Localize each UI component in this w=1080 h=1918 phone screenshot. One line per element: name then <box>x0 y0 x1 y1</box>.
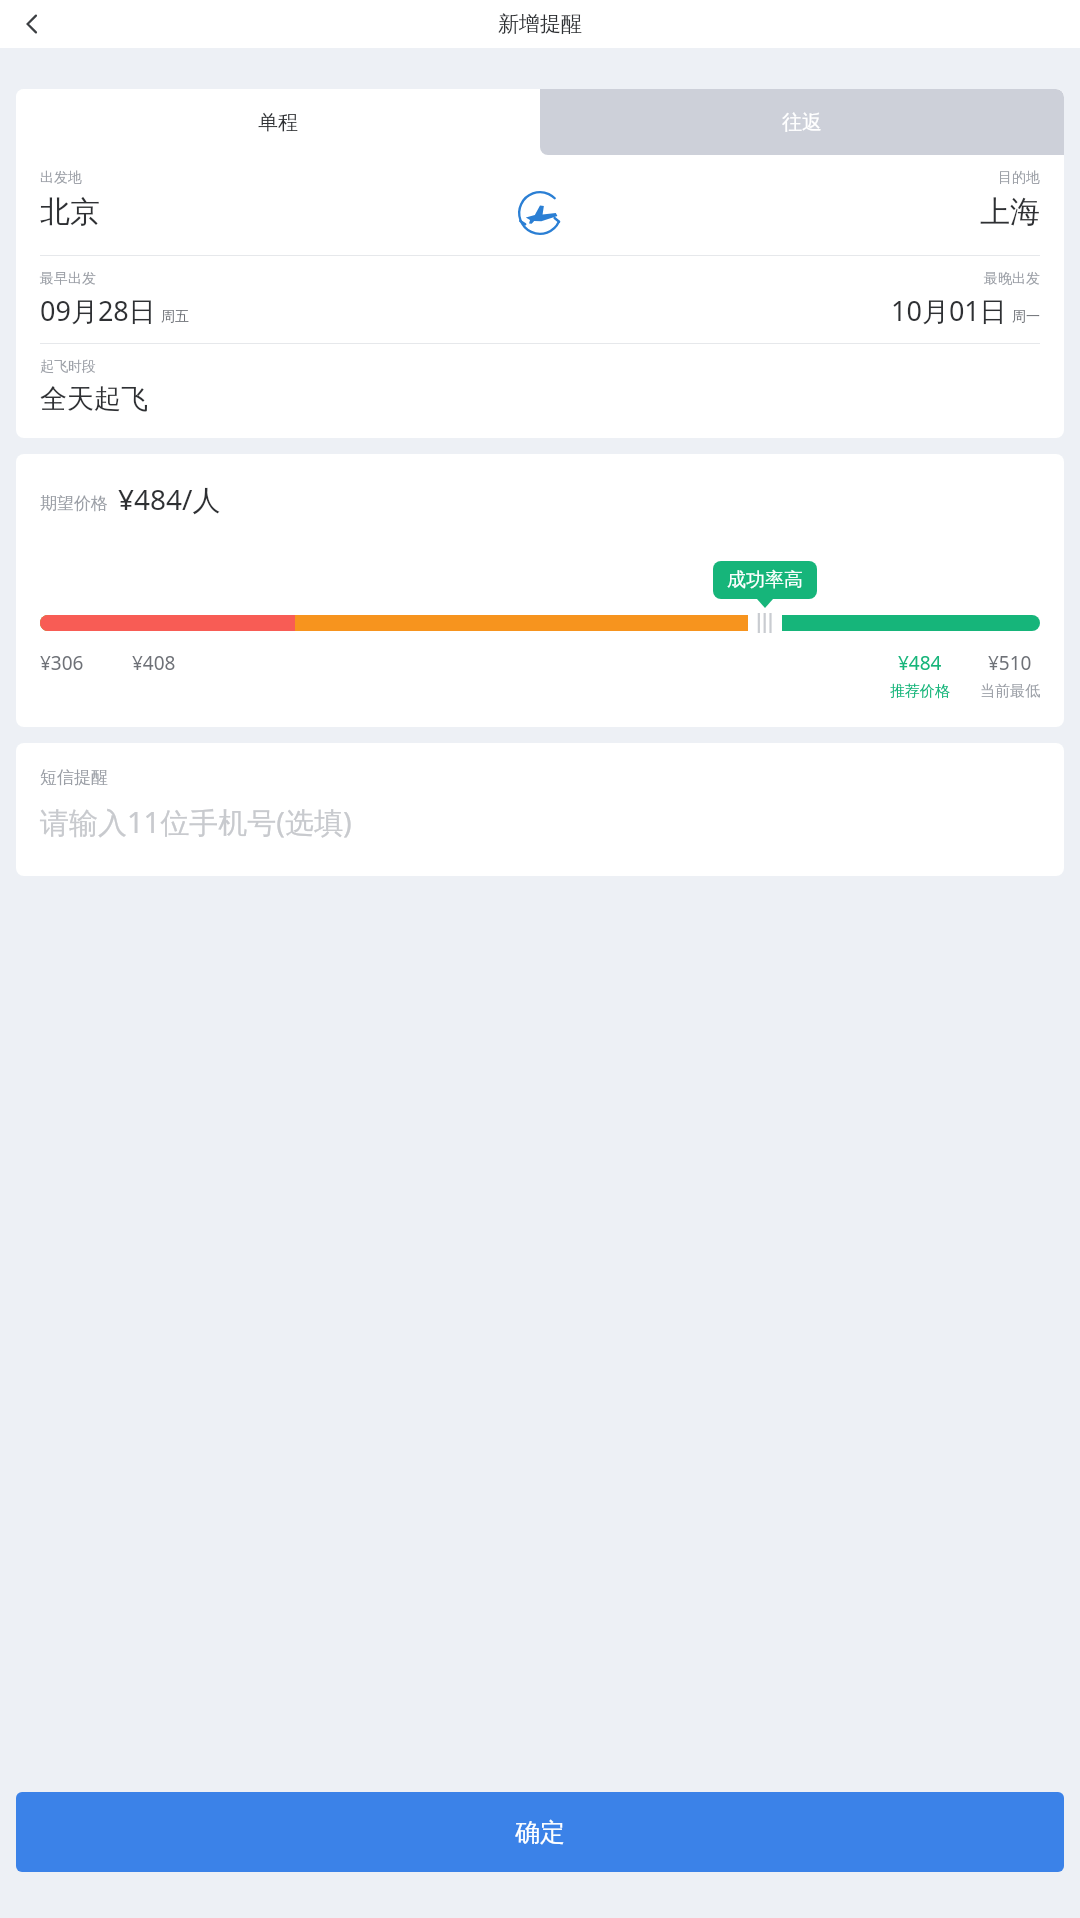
button[interactable]: 目的地 <box>568 169 1040 231</box>
staticText: 确定 <box>515 1817 565 1848</box>
staticText: 周一 <box>1012 308 1040 326</box>
button[interactable]: 期望价格 <box>40 480 221 518</box>
button[interactable]: 确定 <box>16 1792 1064 1872</box>
staticText: 当前最低 <box>980 682 1040 701</box>
staticText: 周五 <box>161 308 189 326</box>
staticText: 成功率高 <box>727 568 803 592</box>
button[interactable]: 往返 <box>540 89 1064 155</box>
staticText: ¥484 <box>898 650 942 676</box>
staticText: 请输入11位手机号(选填) <box>40 802 352 842</box>
button[interactable]: 短信提醒 <box>16 743 1064 876</box>
staticText: 全天起飞 <box>40 382 148 416</box>
staticText: 期望价格 <box>40 493 108 514</box>
button[interactable]: 单程 <box>16 89 540 155</box>
staticText: 推荐价格 <box>890 682 950 701</box>
button[interactable]: Back <box>10 2 54 46</box>
staticText: 北京 <box>40 193 100 231</box>
staticText: 起飞时段 <box>40 358 96 376</box>
staticText: ¥408 <box>132 650 176 676</box>
staticText: 最晚出发 <box>984 270 1040 288</box>
staticText: 上海 <box>980 193 1040 231</box>
staticText: 目的地 <box>998 169 1040 187</box>
button[interactable]: 起飞时段 <box>16 344 1064 438</box>
staticText: ¥484/人 <box>118 480 221 518</box>
button[interactable]: 出发地 <box>40 169 512 231</box>
staticText: 新增提醒 <box>498 11 582 37</box>
staticText: 单程 <box>258 110 298 135</box>
staticText: 10月01日 <box>891 292 1007 329</box>
staticText: 出发地 <box>40 169 82 187</box>
staticText: ¥510 <box>988 650 1032 676</box>
button[interactable]: 最晚出发 <box>540 270 1040 329</box>
staticText: ¥306 <box>40 650 84 676</box>
button[interactable]: Swap origin and destination <box>512 185 568 241</box>
staticText: 09月28日 <box>40 292 156 329</box>
staticText: 最早出发 <box>40 270 96 288</box>
staticText: 往返 <box>782 110 822 135</box>
button[interactable]: 最早出发 <box>40 270 540 329</box>
staticText: 短信提醒 <box>40 767 108 788</box>
button[interactable]: Price slider handle <box>748 608 782 638</box>
